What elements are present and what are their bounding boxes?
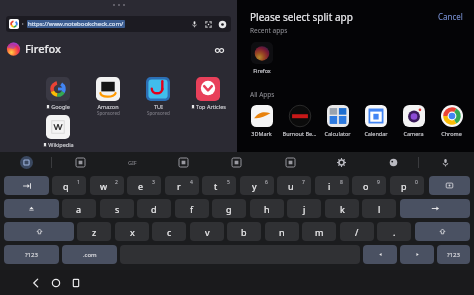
button[interactable]: .com	[62, 245, 117, 264]
button[interactable]: Top Articles	[184, 77, 232, 110]
button[interactable]: d	[137, 199, 171, 218]
staticText: .com	[83, 251, 97, 259]
staticText: Google	[51, 103, 70, 110]
button[interactable]: Keyboard tool 1	[19, 155, 33, 169]
button[interactable]: Firefox	[6, 41, 61, 56]
staticText: Firefox	[253, 67, 271, 74]
button[interactable]: Chrome	[433, 105, 470, 137]
button[interactable]: Cursor left	[363, 245, 397, 264]
staticText: l	[378, 203, 381, 215]
button[interactable]: Shift	[4, 222, 74, 241]
staticText: Burnout Benc...	[281, 130, 318, 137]
button[interactable]: a	[62, 199, 96, 218]
button[interactable]: Keyboard tool 4	[176, 155, 190, 169]
button[interactable]: 3DMark	[243, 105, 280, 137]
button[interactable]: g	[212, 199, 246, 218]
button[interactable]: Backspace	[429, 176, 470, 195]
button[interactable]: b	[227, 222, 261, 241]
staticText: s	[115, 203, 120, 215]
button[interactable]: TUI	[134, 77, 182, 116]
staticText: k	[340, 203, 345, 215]
button[interactable]: z	[77, 222, 111, 241]
button[interactable]: Keyboard tool 6	[283, 155, 297, 169]
staticText: f	[190, 203, 194, 215]
button[interactable]: Enter	[400, 199, 470, 218]
button[interactable]: Sync tabs	[214, 45, 225, 56]
button[interactable]: Camera	[395, 105, 432, 137]
button[interactable]: Calculator	[319, 105, 356, 137]
staticText: t	[214, 180, 218, 192]
staticText: Amazon	[97, 103, 119, 110]
button[interactable]: h	[250, 199, 284, 218]
button[interactable]: Tab	[4, 176, 49, 195]
button[interactable]: Firefox	[243, 42, 280, 74]
button[interactable]: n	[265, 222, 299, 241]
button[interactable]: Google	[34, 77, 82, 110]
staticText: a	[76, 203, 82, 215]
button[interactable]: l	[362, 199, 396, 218]
staticText: GIF	[128, 159, 137, 166]
button[interactable]: j	[287, 199, 321, 218]
staticText: p	[401, 180, 407, 192]
button[interactable]: Calendar	[357, 105, 394, 137]
staticText: b	[241, 226, 247, 238]
button[interactable]: p	[390, 176, 424, 195]
button[interactable]: k	[325, 199, 359, 218]
button[interactable]: o	[352, 176, 386, 195]
button[interactable]: t	[202, 176, 236, 195]
button[interactable]: u	[277, 176, 311, 195]
button[interactable]: q	[52, 176, 86, 195]
button[interactable]: f	[175, 199, 209, 218]
button[interactable]: /	[340, 222, 374, 241]
staticText: /	[355, 226, 359, 238]
button[interactable]: Keyboard tool 2	[73, 155, 87, 169]
button[interactable]: r	[165, 176, 199, 195]
button[interactable]: Keyboard tool 8	[386, 155, 400, 169]
button[interactable]: m	[302, 222, 336, 241]
staticText: q	[63, 180, 69, 192]
button[interactable]: Account	[217, 19, 228, 30]
button[interactable]: Back	[29, 276, 43, 290]
button[interactable]: Wikipedia	[34, 115, 82, 148]
button[interactable]: x	[115, 222, 149, 241]
button[interactable]: i	[315, 176, 349, 195]
staticText: z	[92, 226, 97, 238]
staticText: m	[315, 226, 324, 238]
staticText: g	[226, 203, 232, 215]
button[interactable]: Caps lock	[4, 199, 59, 218]
button[interactable]: c	[152, 222, 186, 241]
staticText: j	[303, 203, 306, 215]
button[interactable]: Burnout Benc...	[281, 105, 318, 137]
button[interactable]: Amazon	[84, 77, 132, 116]
staticText: ?123	[447, 251, 460, 259]
button[interactable]: s	[100, 199, 134, 218]
staticText: i	[328, 180, 331, 192]
staticText: 8	[340, 179, 343, 186]
button[interactable]: Symbols	[437, 245, 470, 264]
button[interactable]: Cancel	[436, 9, 465, 24]
staticText: w	[100, 180, 108, 192]
button[interactable]: Symbols	[4, 245, 59, 264]
button[interactable]: w	[90, 176, 124, 195]
staticText: 0	[415, 179, 418, 186]
button[interactable]: Keyboard tool 5	[229, 155, 243, 169]
staticText: u	[288, 180, 294, 192]
button[interactable]: e	[127, 176, 161, 195]
button[interactable]: Shift right	[415, 222, 470, 241]
button[interactable]: Keyboard tool 3	[125, 155, 139, 169]
button[interactable]: v	[190, 222, 224, 241]
button[interactable]: Recent apps	[69, 276, 83, 290]
staticText: TUI	[154, 103, 163, 110]
staticText: 1	[77, 179, 80, 186]
button[interactable]: Scan QR code	[203, 19, 214, 30]
button[interactable]: Keyboard tool 9	[438, 155, 452, 169]
button[interactable]: Voice search	[189, 19, 200, 30]
button[interactable]: https://www.notebookcheck.com/	[6, 16, 231, 32]
button[interactable]: .	[377, 222, 411, 241]
button[interactable]: y	[240, 176, 274, 195]
button[interactable]: Home	[49, 276, 63, 290]
staticText: Sponsored	[147, 110, 170, 116]
button[interactable]: Keyboard tool 7	[334, 155, 348, 169]
button[interactable]: Cursor right	[400, 245, 434, 264]
